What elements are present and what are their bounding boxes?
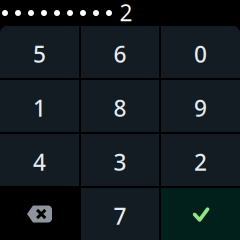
- staticText: 2: [194, 147, 207, 177]
- button[interactable]: 7: [81, 188, 159, 240]
- button[interactable]: 6: [81, 26, 159, 78]
- button[interactable]: 0: [161, 26, 240, 78]
- button[interactable]: 4: [0, 134, 79, 186]
- staticText: 0: [194, 39, 207, 69]
- button[interactable]: 3: [81, 134, 159, 186]
- staticText: 7: [113, 201, 126, 231]
- staticText: 4: [33, 147, 46, 177]
- staticText: 1: [33, 93, 46, 123]
- staticText: 3: [113, 147, 126, 177]
- button[interactable]: 2: [161, 134, 240, 186]
- staticText: 5: [33, 39, 46, 69]
- button[interactable]: Delete: [0, 188, 79, 240]
- staticText: 8: [113, 93, 126, 123]
- button[interactable]: 8: [81, 80, 159, 132]
- button[interactable]: 1: [0, 80, 79, 132]
- staticText: 9: [194, 93, 207, 123]
- button[interactable]: Confirm: [161, 188, 240, 240]
- staticText: 6: [113, 39, 126, 69]
- staticText: 2: [119, 0, 132, 27]
- button[interactable]: 9: [161, 80, 240, 132]
- button[interactable]: 5: [0, 26, 79, 78]
